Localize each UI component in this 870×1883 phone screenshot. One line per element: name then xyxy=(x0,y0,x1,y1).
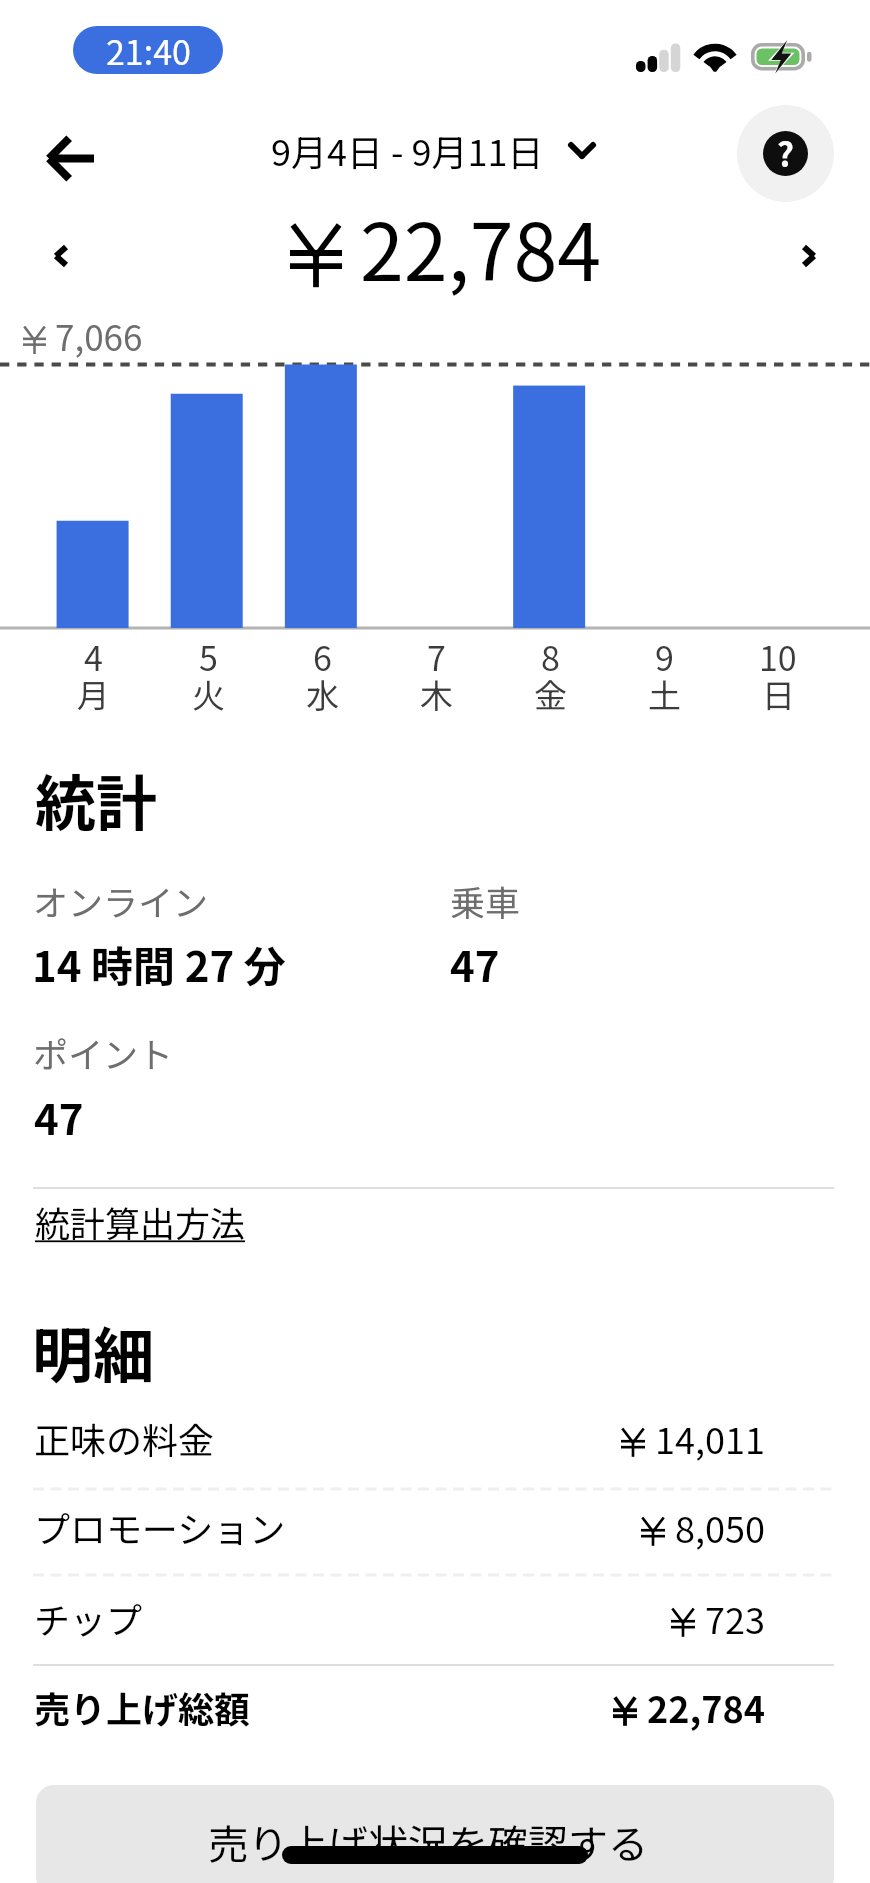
staticText: 正味の料金 xyxy=(34,1412,215,1464)
staticText: 723 xyxy=(705,1592,765,1644)
staticText: 日 xyxy=(762,670,795,718)
staticText: 8,050 xyxy=(675,1501,765,1553)
staticText: 土 xyxy=(648,670,681,718)
button[interactable]: 売り上げ総額 xyxy=(34,1671,834,1743)
staticText: 乗車 xyxy=(450,875,521,926)
staticText: 統計 xyxy=(35,755,158,843)
staticText: 7 xyxy=(427,632,446,681)
button[interactable]: Help xyxy=(737,105,834,202)
staticText: プロモーション xyxy=(34,1501,286,1553)
staticText: 4 xyxy=(84,632,103,681)
staticText: 14 時間 27 分 xyxy=(32,933,286,994)
staticText: 月 xyxy=(77,670,110,718)
button[interactable]: Back xyxy=(31,118,111,198)
staticText: オンライン xyxy=(33,875,209,926)
button[interactable]: Next week xyxy=(772,219,846,293)
staticText: 売り上げ状況を確認する xyxy=(208,1813,648,1871)
staticText: 10 xyxy=(759,632,797,681)
button[interactable]: 9月4日 - 9月11日 xyxy=(251,115,595,185)
button[interactable]: 正味の料金 xyxy=(34,1402,834,1474)
staticText: 水 xyxy=(306,670,339,718)
staticText: 21:40 xyxy=(106,26,191,74)
staticText: 売り上げ総額 xyxy=(34,1681,251,1733)
staticText: 金 xyxy=(534,670,567,718)
staticText: 22,784 xyxy=(360,189,602,303)
staticText: ポイント xyxy=(33,1027,174,1078)
button[interactable]: Previous week xyxy=(24,219,98,293)
staticText: 木 xyxy=(420,670,453,718)
staticText: チップ xyxy=(34,1592,143,1644)
staticText: ? xyxy=(777,129,794,177)
button[interactable]: 売り上げ状況を確認する xyxy=(36,1785,834,1883)
staticText: 8 xyxy=(541,632,560,681)
staticText: 6 xyxy=(313,632,332,681)
staticText: 明細 xyxy=(32,1307,155,1395)
button[interactable]: 統計算出方法 xyxy=(35,1196,246,1247)
staticText: 47 xyxy=(34,1086,84,1147)
staticText: 5 xyxy=(199,632,218,681)
staticText: 22,784 xyxy=(647,1681,765,1733)
staticText: 7,066 xyxy=(55,310,143,361)
staticText: 火 xyxy=(192,670,225,718)
button[interactable]: プロモーション xyxy=(34,1491,834,1563)
button[interactable]: チップ xyxy=(34,1582,834,1654)
staticText: 14,011 xyxy=(655,1412,765,1464)
staticText: 47 xyxy=(450,933,500,994)
staticText: 9 xyxy=(655,632,674,681)
staticText: 9月4日 - 9月11日 xyxy=(271,124,544,176)
